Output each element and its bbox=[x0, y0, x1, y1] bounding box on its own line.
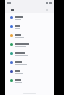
button[interactable] bbox=[5, 22, 54, 31]
button[interactable] bbox=[5, 13, 54, 22]
button[interactable] bbox=[5, 76, 54, 85]
button[interactable]: Search bbox=[45, 8, 49, 12]
button[interactable] bbox=[5, 58, 54, 67]
button[interactable] bbox=[5, 40, 54, 49]
button[interactable] bbox=[5, 49, 54, 58]
button[interactable] bbox=[5, 31, 54, 40]
button[interactable] bbox=[5, 67, 54, 76]
